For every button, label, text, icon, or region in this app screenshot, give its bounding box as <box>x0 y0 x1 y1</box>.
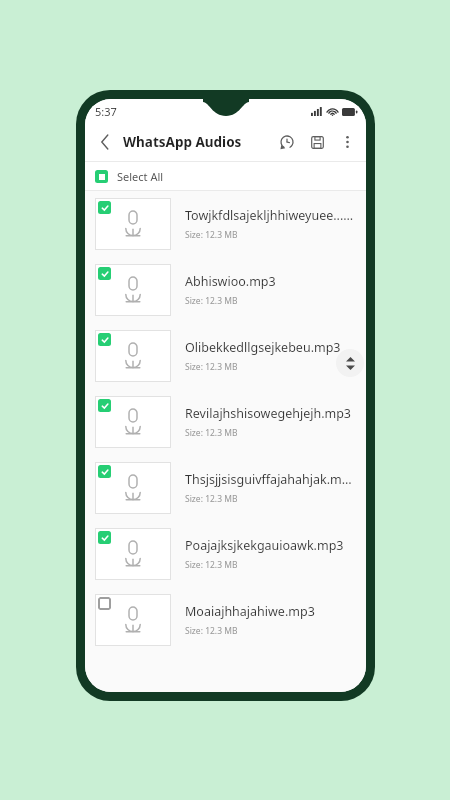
staticText: Size: 12.3 MB <box>185 361 238 373</box>
button[interactable]: More options <box>332 127 362 157</box>
button[interactable]: Selected <box>85 257 366 323</box>
staticText: Revilajhshisowegehjejh.mp3 <box>185 405 352 422</box>
button[interactable]: History <box>272 127 302 157</box>
button[interactable]: Selected <box>85 521 366 587</box>
button[interactable]: Selected <box>98 201 111 214</box>
button[interactable]: Save <box>302 127 332 157</box>
button[interactable]: Not selected <box>98 597 111 610</box>
staticText: Poajajksjkekgauioawk.mp3 <box>185 537 344 554</box>
staticText: Olibekkedllgsejkebeu.mp3 <box>185 339 341 356</box>
button[interactable]: Selected <box>85 455 366 521</box>
button[interactable]: Selected <box>85 389 366 455</box>
button[interactable]: Selected <box>85 191 366 257</box>
staticText: Size: 12.3 MB <box>185 427 238 439</box>
staticText: Moaiajhhajahiwe.mp3 <box>185 603 315 620</box>
button[interactable]: Selected <box>98 267 111 280</box>
button[interactable]: Back <box>91 128 119 156</box>
button[interactable]: Not selected <box>85 587 366 653</box>
staticText: 5:37 <box>95 104 117 119</box>
button[interactable]: Selected <box>98 399 111 412</box>
staticText: Size: 12.3 MB <box>185 625 238 637</box>
staticText: Select All <box>117 169 164 184</box>
staticText: Towjkfdlsajekljhhiweyuee....mp3 <box>185 207 354 224</box>
staticText: Size: 12.3 MB <box>185 295 238 307</box>
staticText: WhatsApp Audios <box>123 133 242 151</box>
staticText: Size: 12.3 MB <box>185 493 238 505</box>
staticText: Thsjsjjsisguivffajahahjak.mp3 <box>185 471 354 488</box>
staticText: Abhiswioo.mp3 <box>185 273 276 290</box>
button[interactable]: Selected <box>98 465 111 478</box>
button[interactable]: Selected <box>98 333 111 346</box>
staticText: Size: 12.3 MB <box>185 559 238 571</box>
button[interactable]: Selected <box>98 531 111 544</box>
button[interactable]: Select All <box>85 162 366 190</box>
staticText: Size: 12.3 MB <box>185 229 238 241</box>
button[interactable]: Fast scroll <box>336 349 364 377</box>
button[interactable]: Selected <box>85 323 366 389</box>
